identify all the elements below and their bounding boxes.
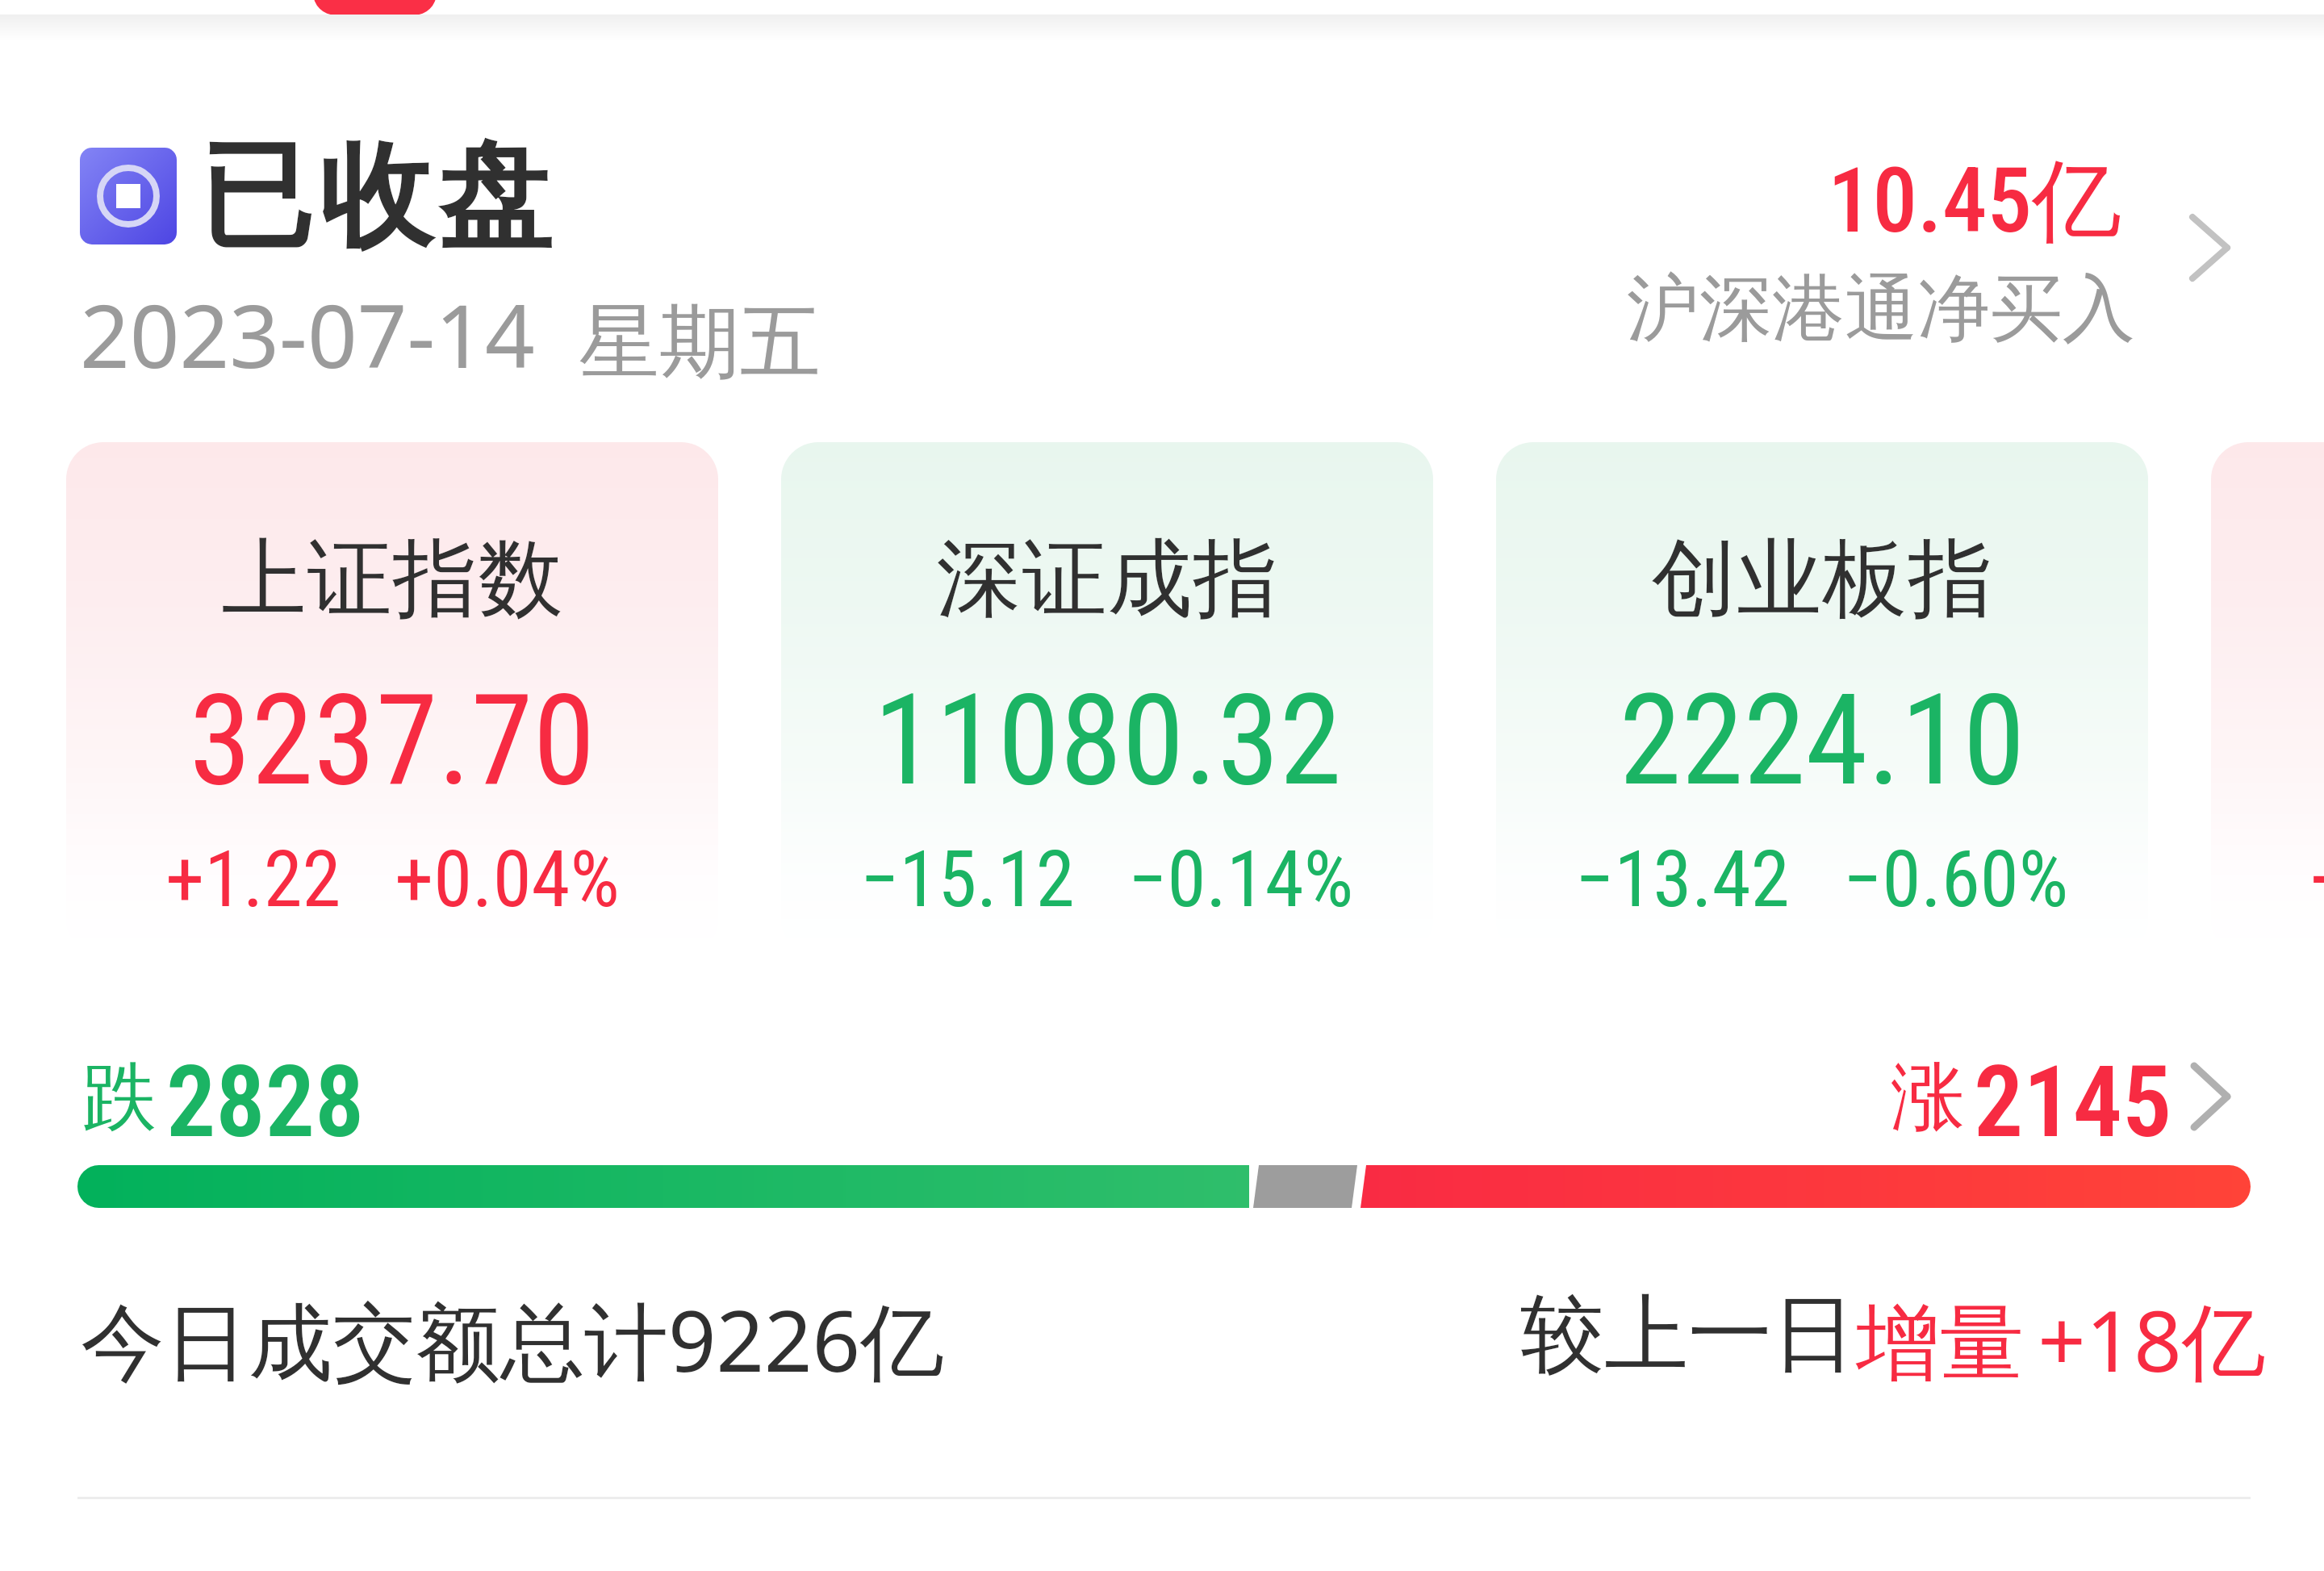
staticText: 11080.32 — [873, 666, 1342, 814]
staticText: 2023-07-14 — [80, 275, 535, 394]
staticText: −13.42 — [1575, 834, 1790, 925]
staticText: 上证指数 — [221, 526, 564, 633]
button[interactable]: 科创50 — [2211, 442, 2324, 955]
staticText: 创业板指 — [1651, 526, 1994, 633]
staticText: 今日成交额总计9226亿 — [81, 1282, 944, 1397]
staticText: 已收盘 — [199, 125, 558, 269]
staticText: −0.60% — [1843, 834, 2069, 925]
button[interactable]: 跌 — [77, 1025, 376, 1146]
staticText: 较上一日 — [1520, 1282, 1856, 1388]
staticText: 星期五 — [579, 292, 821, 394]
button[interactable]: 深证成指 — [781, 442, 1433, 955]
staticText: 10.45亿 — [1828, 145, 2121, 258]
button[interactable]: 上证指数 — [66, 442, 718, 955]
staticText: 深证成指 — [936, 526, 1279, 633]
staticText: 3237.70 — [189, 666, 596, 814]
staticText: 沪深港通净买入 — [1627, 263, 2135, 354]
button[interactable]: 10.45亿 — [1582, 121, 2268, 347]
staticText: 2145 — [1974, 1045, 2172, 1160]
button[interactable]: 涨 — [1880, 1025, 2243, 1146]
other: 查看涨跌分布 — [2188, 1062, 2237, 1133]
staticText: 涨 — [1891, 1051, 1965, 1144]
button[interactable]: 创业板指 — [1496, 442, 2148, 955]
staticText: +1.22 — [165, 834, 341, 925]
staticText: 2828 — [166, 1045, 365, 1160]
other: 查看沪深港通详情 — [2188, 213, 2235, 286]
staticText: 跌 — [82, 1051, 157, 1144]
staticText: +2.40 — [2310, 834, 2324, 925]
staticText: −15.12 — [860, 834, 1075, 925]
staticText: 2224.10 — [1619, 666, 2025, 814]
staticText: −0.14% — [1128, 834, 1354, 925]
staticText: 增量 +18亿 — [1856, 1282, 2266, 1397]
staticText: +0.04% — [395, 834, 620, 925]
